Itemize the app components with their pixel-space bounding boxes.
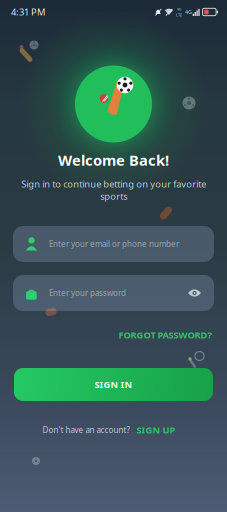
staticText: SIGN IN — [94, 378, 132, 391]
staticText: Enter your password — [49, 288, 126, 298]
staticText: Vo — [177, 6, 181, 12]
staticText: 4:31 PM — [11, 6, 45, 18]
staticText: Enter your email or phone number — [49, 239, 179, 249]
button[interactable]: SIGN UP — [134, 420, 177, 440]
staticText: SIGN UP — [136, 424, 175, 436]
button[interactable]: FORGOT PASSWORD? — [115, 325, 214, 345]
button[interactable]: SIGN IN — [14, 368, 213, 401]
button[interactable]: Enter your email or phone number — [13, 226, 214, 262]
staticText: Don't have an account? — [42, 425, 129, 435]
staticText: 4G — [185, 8, 192, 16]
staticText: LTE — [176, 12, 182, 18]
button[interactable]: Enter your password — [13, 275, 214, 311]
staticText: Sign in to continue betting on your favo… — [21, 178, 206, 202]
staticText: Welcome Back! — [58, 150, 169, 170]
staticText: FORGOT PASSWORD? — [118, 329, 211, 341]
